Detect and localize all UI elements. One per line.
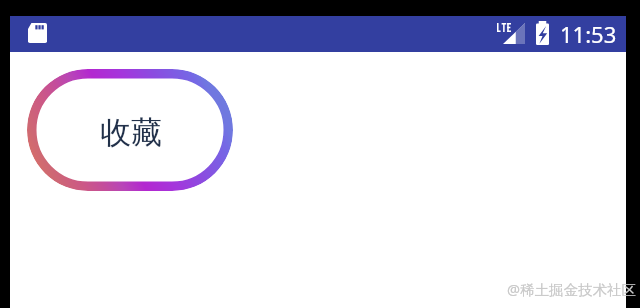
other: Battery charging: [536, 21, 549, 45]
staticText: 11:53: [560, 19, 617, 49]
staticText: 收藏: [100, 113, 162, 152]
other: SD card: [28, 23, 47, 43]
other: LTE: [497, 23, 511, 32]
other: Signal strength: [503, 23, 525, 44]
staticText: @稀土掘金技术社区: [507, 279, 637, 299]
button[interactable]: 收藏: [27, 69, 233, 191]
